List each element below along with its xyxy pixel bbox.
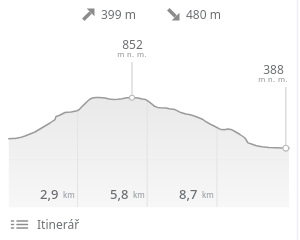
button[interactable]: Itinerář [0,208,300,240]
button[interactable]: Total descent [167,6,221,22]
staticText: Itinerář [37,216,80,232]
staticText: 852 [122,36,143,52]
staticText: 2,9 [40,185,59,203]
staticText: m n. m. [258,74,288,84]
staticText: 480 m [186,6,221,22]
staticText: 388 [263,61,284,77]
other: Total ascent [82,8,95,21]
staticText: m n. m. [117,49,147,59]
staticText: km [63,189,75,200]
staticText: 399 m [101,6,136,22]
staticText: km [133,189,145,200]
staticText: 8,7 [179,185,198,203]
staticText: 5,8 [110,185,129,203]
other: Total descent [167,8,180,21]
staticText: km [202,189,214,200]
button[interactable]: Total ascent [82,6,136,22]
